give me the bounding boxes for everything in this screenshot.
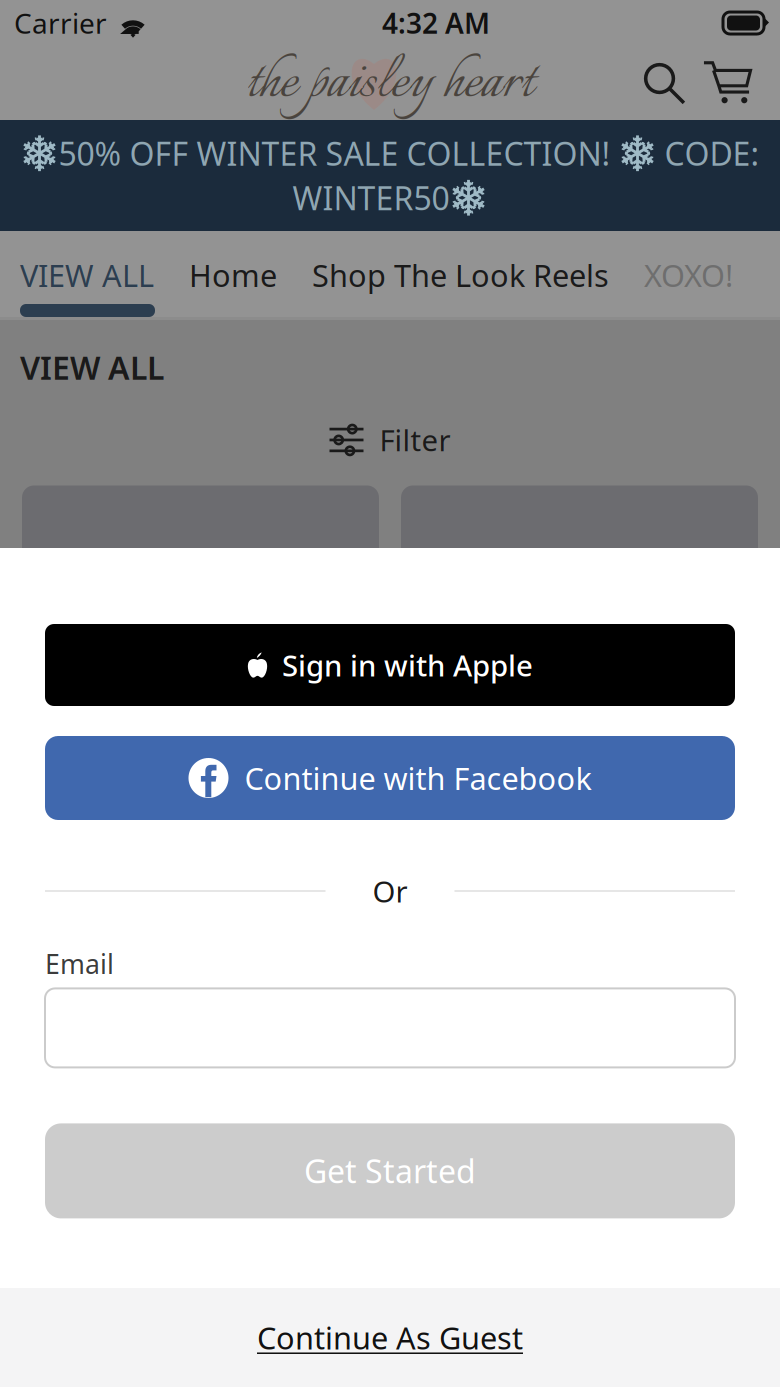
staticText: the paisley heart <box>246 40 534 126</box>
staticText: Or <box>372 871 407 910</box>
staticText: Continue As Guest <box>257 1317 523 1358</box>
button[interactable]: Continue As Guest <box>0 1288 780 1387</box>
button[interactable]: Shopping cart <box>697 51 757 111</box>
button[interactable]: Filter <box>0 388 780 459</box>
button[interactable]: Continue with Facebook <box>45 736 735 820</box>
staticText: 50% OFF WINTER SALE COLLECTION! <box>58 132 610 174</box>
button[interactable]: Get Started <box>45 1123 735 1218</box>
button[interactable]: VIEW ALL <box>0 231 189 297</box>
staticText: Filter <box>379 420 450 459</box>
staticText: VIEW ALL <box>20 255 154 295</box>
staticText: Shop The Look Reels <box>312 255 609 295</box>
button[interactable]: Shop The Look Reels <box>312 231 644 297</box>
staticText: XOXO! <box>644 255 733 295</box>
button[interactable]: XOXO! <box>644 231 733 297</box>
button[interactable]: Home <box>189 231 312 297</box>
staticText: VIEW ALL <box>20 346 164 388</box>
staticText: Home <box>189 255 277 295</box>
staticText: Get Started <box>304 1150 476 1192</box>
staticText: CODE: <box>664 132 759 174</box>
staticText: 4:32 AM <box>382 4 490 42</box>
staticText: Carrier <box>14 4 107 42</box>
staticText: WINTER50 <box>292 176 449 219</box>
button[interactable]: Sign in with Apple <box>45 624 735 706</box>
staticText: Sign in with Apple <box>282 645 533 684</box>
staticText: Email <box>45 946 114 981</box>
staticText: Continue with Facebook <box>244 758 591 798</box>
button[interactable]: Search <box>636 55 694 113</box>
